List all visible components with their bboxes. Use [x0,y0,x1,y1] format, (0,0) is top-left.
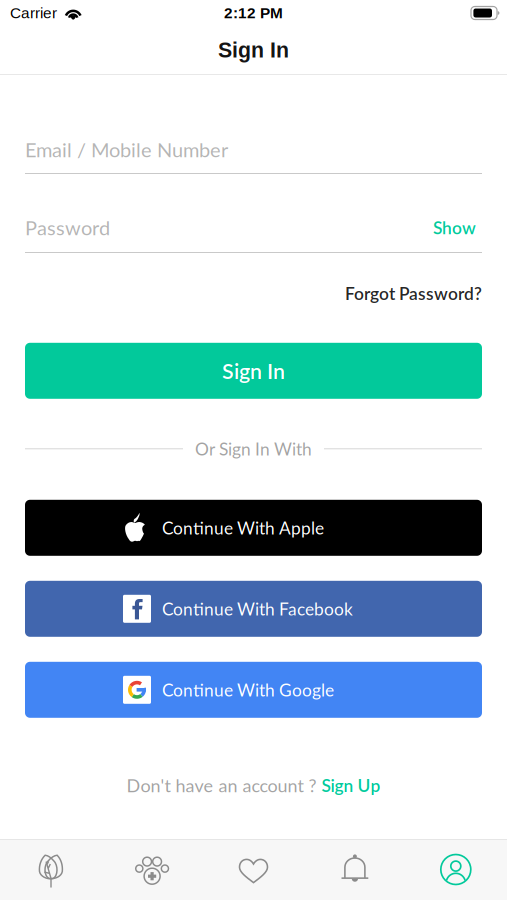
button[interactable]: Continue With Google [25,662,482,718]
button[interactable]: Plants [0,840,101,900]
button[interactable]: Favourites [203,840,304,900]
staticText: Email / Mobile Number [25,137,228,161]
staticText: Sign Up [321,775,380,796]
staticText: 2:12 PM [224,4,283,21]
staticText: Continue With Facebook [162,598,353,619]
staticText: Password [25,215,110,239]
button[interactable]: Sign Up [321,775,380,796]
button[interactable]: Sign In [25,343,482,399]
button[interactable]: Show [421,214,482,241]
staticText: Or Sign In With [195,438,312,459]
staticText: Forgot Password? [345,283,482,304]
button[interactable]: Continue With Facebook [25,581,482,637]
staticText: Show [433,217,476,238]
staticText: Don't have an account ? [126,774,316,796]
button[interactable]: Pet care [101,840,203,900]
button[interactable]: Forgot Password? [345,283,482,304]
staticText: Continue With Google [162,679,334,700]
button[interactable]: Profile [406,840,507,900]
staticText: Sign In [218,38,289,62]
button[interactable]: Notifications [304,840,406,900]
button[interactable]: Continue With Apple [25,500,482,556]
staticText: Continue With Apple [162,517,324,538]
staticText: Carrier [10,4,57,21]
staticText: Sign In [222,358,285,384]
